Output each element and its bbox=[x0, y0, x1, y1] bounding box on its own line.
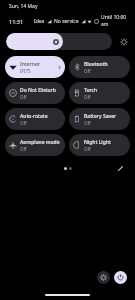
staticText: Off bbox=[84, 146, 91, 152]
staticText: IFI75 bbox=[20, 68, 31, 74]
staticText: Off bbox=[84, 94, 91, 100]
button[interactable]: Do Not Disturb bbox=[5, 82, 65, 104]
staticText: Internet bbox=[20, 61, 40, 68]
button[interactable]: Open settings bbox=[97, 271, 110, 284]
staticText: Off bbox=[20, 146, 27, 152]
staticText: Night Light bbox=[84, 139, 111, 146]
staticText: Off bbox=[84, 68, 91, 74]
button[interactable]: Bluetooth bbox=[69, 56, 130, 78]
staticText: Bluetooth bbox=[84, 61, 108, 68]
button[interactable]: Auto-rotate bbox=[5, 108, 65, 130]
staticText: Until 10:00 am bbox=[101, 14, 127, 28]
button[interactable]: Edit tiles bbox=[115, 163, 126, 174]
staticText: Off bbox=[20, 94, 27, 100]
staticText: Idea bbox=[34, 18, 45, 25]
staticText: Battery Saver bbox=[84, 113, 117, 120]
staticText: Do Not Disturb bbox=[20, 87, 56, 94]
button[interactable]: Torch bbox=[69, 82, 130, 104]
button[interactable]: Aeroplane mode bbox=[5, 134, 65, 156]
staticText: Off bbox=[20, 120, 27, 126]
button[interactable]: Settings bbox=[118, 36, 130, 48]
staticText: Aeroplane mode bbox=[20, 139, 60, 146]
button[interactable]: Night Light bbox=[69, 134, 130, 156]
button[interactable]: Battery Saver bbox=[69, 108, 130, 130]
staticText: Auto-rotate bbox=[20, 113, 48, 120]
button[interactable]: Brightness bbox=[6, 33, 112, 50]
staticText: Off bbox=[84, 120, 91, 126]
staticText: No service bbox=[54, 18, 79, 25]
staticText: Sun, 14 May bbox=[9, 3, 38, 10]
button[interactable]: Internet bbox=[5, 56, 65, 78]
staticText: 11:31 bbox=[9, 18, 24, 25]
staticText: Torch bbox=[84, 87, 98, 94]
button[interactable]: Power bbox=[114, 271, 127, 284]
